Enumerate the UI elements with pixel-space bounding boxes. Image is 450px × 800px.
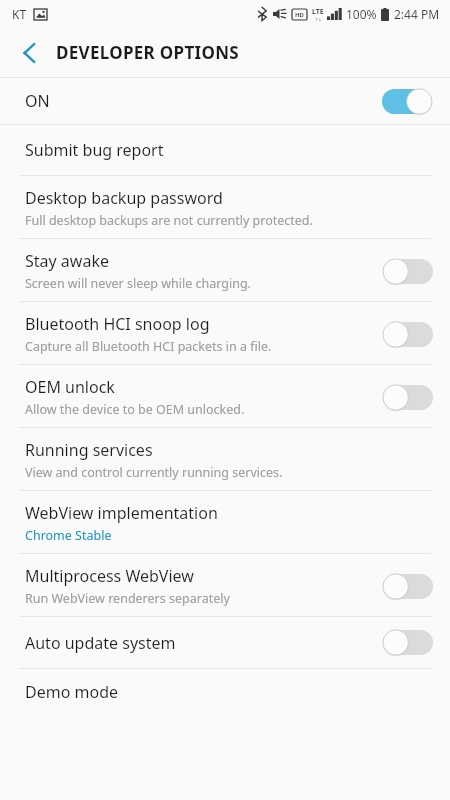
staticText: ↑↓ (315, 17, 322, 22)
staticText: DEVELOPER OPTIONS (56, 41, 239, 64)
button[interactable]: OEM unlock (0, 365, 450, 427)
staticText: Multiprocess WebView (25, 565, 194, 587)
button[interactable]: Toggle on (382, 88, 433, 115)
staticText: Auto update system (25, 632, 176, 654)
staticText: HD (295, 11, 304, 19)
staticText: WebView implementation (25, 502, 218, 524)
button[interactable]: Running services (0, 428, 450, 490)
button[interactable]: Desktop backup password (0, 176, 450, 238)
button[interactable]: Toggle off (382, 629, 433, 656)
staticText: OEM unlock (25, 376, 115, 398)
staticText: Desktop backup password (25, 187, 223, 209)
staticText: Chrome Stable (25, 527, 112, 544)
button[interactable]: Toggle off (382, 258, 433, 285)
staticText: Submit bug report (25, 139, 164, 161)
staticText: 2:44 PM (394, 6, 440, 22)
staticText: Bluetooth HCI snoop log (25, 313, 210, 335)
button[interactable]: Back (12, 36, 46, 70)
button[interactable]: Submit bug report (0, 125, 450, 175)
button[interactable]: Toggle off (382, 384, 433, 411)
staticText: KT (12, 6, 27, 22)
button[interactable]: Bluetooth HCI snoop log (0, 302, 450, 364)
button[interactable]: WebView implementation (0, 491, 450, 553)
staticText: Run WebView renderers separately (25, 590, 230, 607)
staticText: LTE (312, 7, 324, 17)
button[interactable]: ON (0, 78, 450, 124)
button[interactable]: Toggle off (382, 321, 433, 348)
button[interactable]: Toggle off (382, 573, 433, 600)
button[interactable]: Multiprocess WebView (0, 554, 450, 616)
staticText: Stay awake (25, 250, 109, 272)
staticText: Screen will never sleep while charging. (25, 275, 251, 292)
staticText: Capture all Bluetooth HCI packets in a f… (25, 338, 272, 355)
staticText: 100% (346, 6, 377, 22)
staticText: Running services (25, 439, 153, 461)
staticText: ON (25, 90, 50, 112)
staticText: Full desktop backups are not currently p… (25, 212, 313, 229)
button[interactable]: Stay awake (0, 239, 450, 301)
button[interactable]: Demo mode (0, 669, 450, 715)
staticText: Allow the device to be OEM unlocked. (25, 401, 245, 418)
staticText: Demo mode (25, 681, 119, 703)
button[interactable]: Auto update system (0, 617, 450, 668)
staticText: View and control currently running servi… (25, 464, 283, 481)
